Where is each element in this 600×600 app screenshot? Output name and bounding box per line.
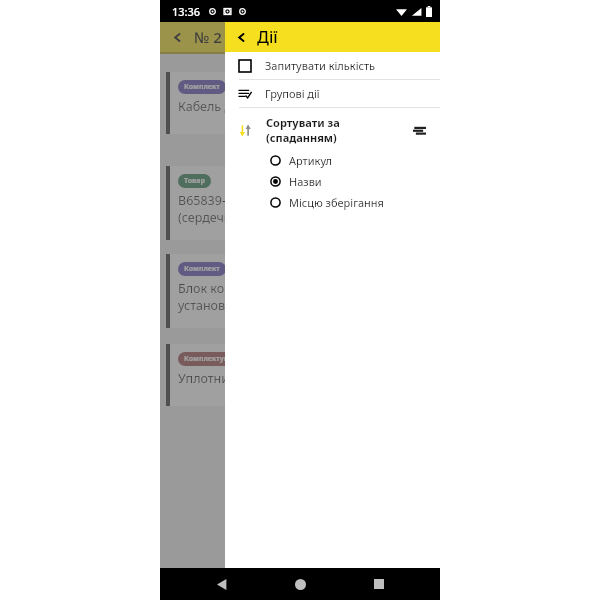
button[interactable]: Місцю зберігання: [225, 192, 440, 213]
button[interactable]: Комплектую: [166, 344, 286, 406]
button[interactable]: Комплект: [166, 72, 286, 134]
button[interactable]: Назви: [225, 171, 440, 192]
staticText: B65839-: [178, 192, 226, 209]
staticText: Комплект: [184, 82, 220, 92]
staticText: Блок ком: [178, 280, 234, 297]
staticText: (спаданням): [266, 130, 337, 145]
staticText: Комплект: [184, 264, 220, 274]
button[interactable]: Артикул: [225, 150, 440, 171]
button[interactable]: Recents: [362, 568, 396, 600]
staticText: Запитувати кількість: [265, 58, 376, 73]
staticText: (сердечн: [178, 209, 232, 226]
button[interactable]: Sort options: [408, 119, 430, 141]
staticText: Групові дії: [265, 86, 320, 101]
button[interactable]: Home: [283, 568, 317, 600]
staticText: Дії: [257, 26, 278, 48]
staticText: установ: [178, 297, 226, 314]
staticText: Артикул: [289, 153, 332, 168]
staticText: Кабель Д: [178, 98, 234, 115]
staticText: Товар: [184, 176, 205, 186]
staticText: Місцю зберігання: [289, 195, 384, 210]
button[interactable]: Комплект: [166, 254, 286, 328]
staticText: Назви: [289, 174, 322, 189]
staticText: Сортувати за: [266, 115, 340, 130]
button[interactable]: Групові дії: [225, 80, 440, 107]
button[interactable]: Back: [225, 22, 257, 52]
button[interactable]: Запитувати кількість: [225, 52, 440, 79]
staticText: № 2: [194, 27, 222, 47]
staticText: Комплектую: [184, 354, 230, 364]
button[interactable]: Back: [205, 568, 239, 600]
staticText: 13:36: [172, 4, 201, 19]
button[interactable]: Сортувати за: [225, 108, 440, 150]
staticText: Уплотни: [178, 370, 230, 387]
button[interactable]: Back: [160, 22, 194, 52]
button[interactable]: Товар: [166, 166, 286, 240]
